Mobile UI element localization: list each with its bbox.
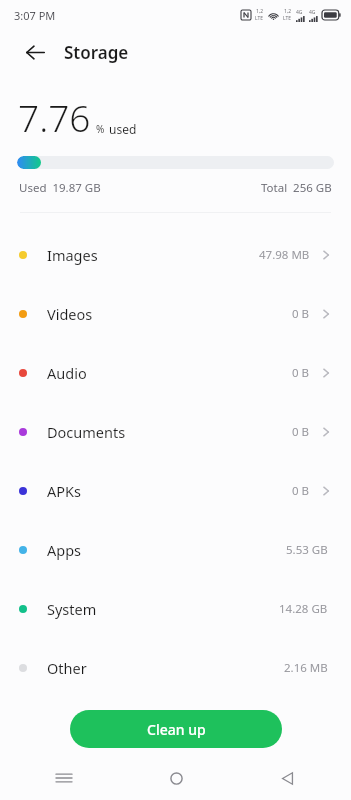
staticText: Audio (47, 363, 87, 383)
staticText: 4G (296, 9, 303, 16)
staticText: 0 B (292, 306, 310, 322)
staticText: 4G (309, 9, 316, 16)
staticText: 47.98 MB (259, 247, 310, 263)
staticText: 14.28 GB (279, 601, 328, 617)
button[interactable]: System (0, 579, 351, 638)
staticText: used (109, 121, 137, 137)
staticText: 1,2 (284, 8, 292, 15)
staticText: 7.76 (18, 92, 91, 142)
button[interactable]: Audio (0, 343, 351, 402)
button[interactable]: Images (0, 225, 351, 284)
staticText: % (96, 122, 105, 136)
staticText: 2.16 MB (284, 660, 328, 676)
staticText: 5.53 GB (286, 542, 328, 558)
staticText: LTE (255, 15, 264, 22)
button[interactable]: Recents (46, 760, 82, 796)
staticText: Apps (47, 540, 82, 560)
staticText: Documents (47, 422, 126, 442)
staticText: Used 19.87 GB (19, 180, 101, 196)
staticText: Total 256 GB (261, 180, 332, 196)
staticText: System (47, 599, 97, 619)
staticText: 0 B (292, 424, 310, 440)
staticText: Videos (47, 304, 93, 324)
staticText: APKs (47, 481, 81, 501)
button[interactable]: Documents (0, 402, 351, 461)
button[interactable]: Other (0, 638, 351, 697)
button[interactable]: Back (269, 760, 305, 796)
staticText: 0 B (292, 365, 310, 381)
staticText: 0 B (292, 483, 310, 499)
button[interactable]: Apps (0, 520, 351, 579)
button[interactable]: Clean up (70, 710, 282, 748)
button[interactable]: Home (158, 760, 194, 796)
staticText: 3:07 PM (14, 8, 56, 23)
button[interactable]: Back (18, 35, 52, 69)
button[interactable]: Videos (0, 284, 351, 343)
staticText: LTE (283, 15, 292, 22)
staticText: Other (47, 658, 87, 678)
button[interactable]: APKs (0, 461, 351, 520)
staticText: Clean up (147, 720, 206, 739)
staticText: Storage (64, 41, 129, 64)
staticText: 1,2 (256, 8, 264, 15)
staticText: Images (47, 245, 98, 265)
